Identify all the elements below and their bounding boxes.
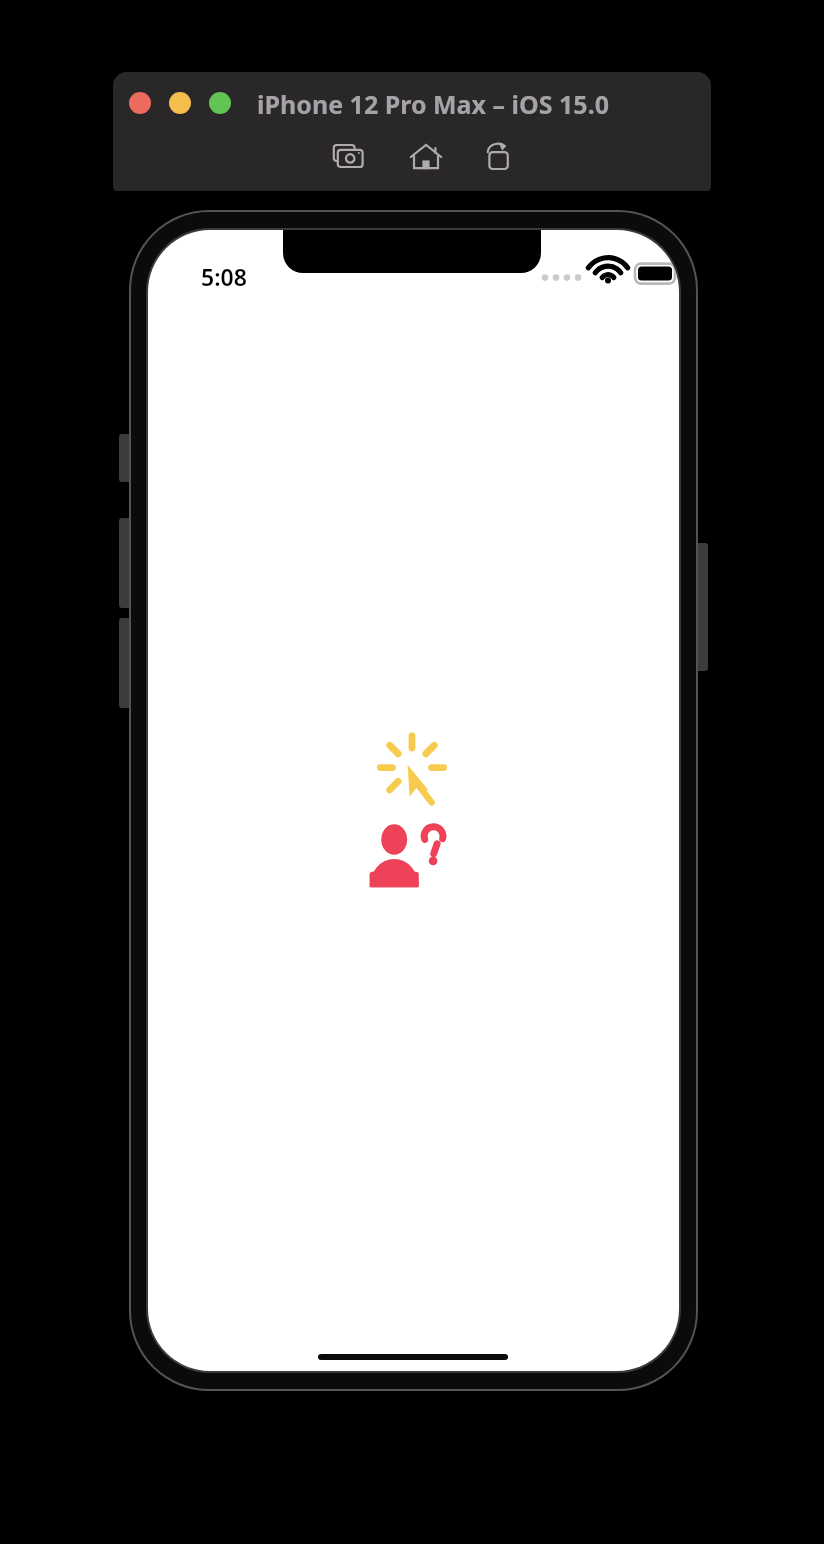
button[interactable]: Home [401, 135, 451, 179]
button[interactable]: Minimize [169, 92, 191, 114]
staticText: 5:08 [201, 261, 247, 289]
button[interactable]: Screenshot [324, 135, 374, 179]
staticText: iPhone 12 Pro Max – iOS 15.0 [257, 87, 609, 121]
button[interactable]: Close [129, 92, 151, 114]
button[interactable]: Rotate [474, 135, 524, 179]
button[interactable]: Maximize [209, 92, 231, 114]
